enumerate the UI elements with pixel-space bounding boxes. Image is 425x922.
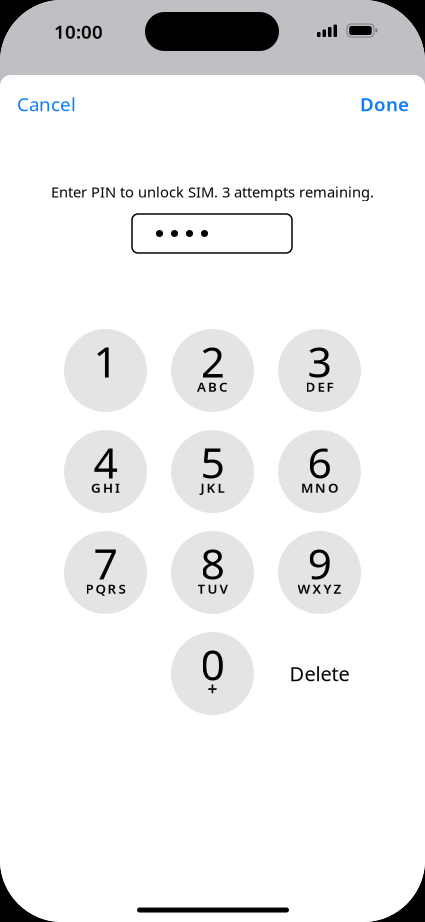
button[interactable]: 3 xyxy=(278,329,361,412)
staticText: 4 xyxy=(93,434,117,490)
staticText: 9 xyxy=(307,535,331,591)
staticText: Cancel xyxy=(17,92,76,116)
staticText: 7 xyxy=(93,535,117,591)
staticText: J K L xyxy=(200,479,224,496)
staticText: 5 xyxy=(200,434,224,490)
staticText: Delete xyxy=(289,660,349,687)
staticText: T U V xyxy=(197,580,227,597)
staticText: 10:00 xyxy=(54,19,103,44)
staticText: + xyxy=(207,677,217,700)
staticText: 1 xyxy=(93,333,117,389)
staticText: Enter PIN to unlock SIM. 3 attempts rema… xyxy=(51,182,374,201)
staticText: 8 xyxy=(200,535,224,591)
staticText: W X Y Z xyxy=(297,580,341,597)
button[interactable]: 6 xyxy=(278,430,361,513)
button[interactable]: 2 xyxy=(171,329,254,412)
staticText: A B C xyxy=(197,378,228,395)
staticText: 3 xyxy=(307,333,331,389)
staticText: P Q R S xyxy=(85,580,125,597)
staticText: D E F xyxy=(305,378,333,395)
staticText: 6 xyxy=(307,434,331,490)
staticText: 0 xyxy=(200,636,224,692)
button[interactable]: 8 xyxy=(171,531,254,614)
button[interactable]: Delete xyxy=(278,632,361,715)
button[interactable]: 7 xyxy=(64,531,147,614)
button[interactable]: 5 xyxy=(171,430,254,513)
button[interactable]: 9 xyxy=(278,531,361,614)
button[interactable]: 0 xyxy=(171,632,254,715)
button[interactable]: 1 xyxy=(64,329,147,412)
staticText: M N O xyxy=(301,479,338,496)
button[interactable]: Done xyxy=(347,82,409,126)
button[interactable]: 4 xyxy=(64,430,147,513)
staticText: 2 xyxy=(200,333,224,389)
staticText: G H I xyxy=(91,479,120,496)
button[interactable]: Cancel xyxy=(17,82,93,126)
staticText: Done xyxy=(360,92,409,116)
